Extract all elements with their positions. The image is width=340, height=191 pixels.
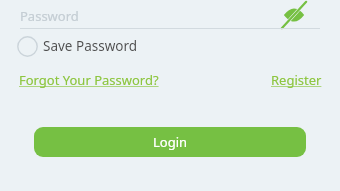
- staticText: Login: [153, 133, 188, 151]
- staticText: Forgot Your Password?: [19, 71, 159, 89]
- button[interactable]: Hide password: [278, 2, 310, 28]
- staticText: Register: [271, 71, 322, 89]
- button[interactable]: Save Password: [17, 34, 138, 58]
- button[interactable]: Login: [34, 127, 306, 157]
- button[interactable]: Forgot Your Password?: [19, 70, 159, 90]
- staticText: Save Password: [43, 37, 138, 55]
- staticText: Password: [20, 7, 79, 25]
- button[interactable]: Register: [271, 70, 322, 90]
- button[interactable]: Password: [20, 4, 320, 28]
